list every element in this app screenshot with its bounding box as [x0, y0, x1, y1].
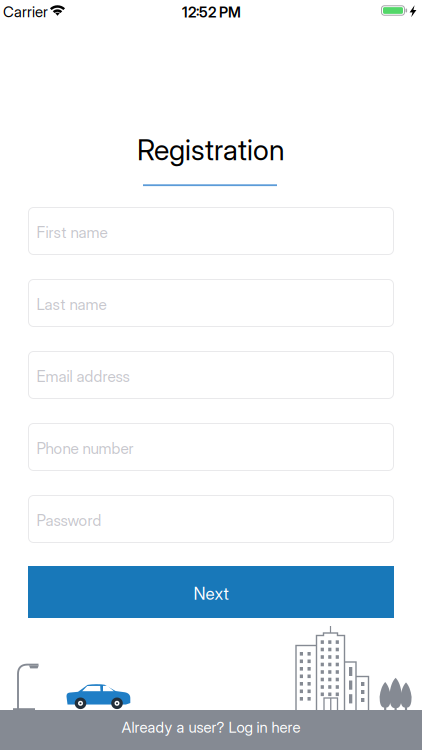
button[interactable]: Email address	[28, 351, 394, 399]
staticText: Last name	[36, 295, 106, 313]
staticText: First name	[36, 223, 107, 241]
staticText: Carrier	[3, 3, 48, 20]
staticText: Password	[36, 511, 101, 529]
staticText: Next	[193, 584, 228, 603]
staticText: 12:52 PM	[182, 4, 241, 21]
button[interactable]: Last name	[28, 279, 394, 327]
button[interactable]: First name	[28, 207, 394, 255]
button[interactable]: Password	[28, 495, 394, 543]
button[interactable]: Phone number	[28, 423, 394, 471]
staticText: Phone number	[36, 439, 133, 457]
staticText: Registration	[137, 134, 285, 166]
button[interactable]: Already a user? Log in here	[0, 710, 422, 750]
staticText: Email address	[36, 367, 129, 385]
staticText: Already a user? Log in here	[121, 719, 300, 736]
button[interactable]: Next	[28, 566, 394, 618]
